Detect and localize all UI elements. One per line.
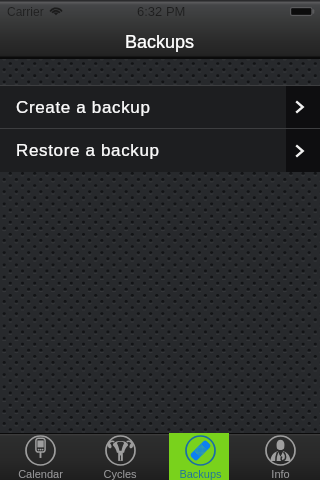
staticText: Carrier (7, 5, 44, 18)
staticText: Info (271, 468, 290, 480)
other: Battery (290, 7, 314, 16)
staticText: Cycles (103, 468, 137, 480)
staticText: Backups (125, 32, 195, 52)
button[interactable]: Restore a backup (0, 129, 320, 172)
button[interactable]: Info (240, 433, 320, 480)
button[interactable]: Create a backup (0, 86, 320, 128)
button[interactable]: Calendar (0, 433, 80, 480)
other: Cycles (105, 435, 136, 466)
other: Info (265, 435, 296, 466)
button[interactable]: Cycles (80, 433, 160, 480)
other: Wi-Fi (50, 6, 62, 15)
button[interactable]: Backups (160, 433, 240, 480)
staticText: Calendar (18, 468, 63, 480)
other: Backups (185, 435, 216, 466)
staticText: Restore a backup (16, 141, 160, 160)
staticText: 6:32 PM (137, 4, 186, 19)
staticText: Backups (179, 468, 222, 480)
other: Calendar (25, 435, 56, 466)
other: Create a backup (286, 86, 320, 128)
other: Restore a backup (286, 129, 320, 172)
staticText: Create a backup (16, 98, 151, 117)
